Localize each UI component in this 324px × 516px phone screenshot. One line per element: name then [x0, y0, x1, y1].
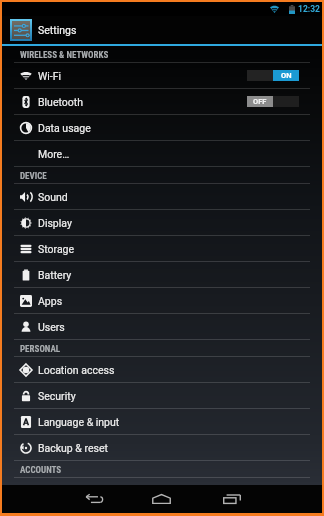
button[interactable]: More… [2, 141, 322, 166]
staticText: Security [38, 390, 76, 402]
staticText: Storage [38, 243, 75, 255]
button[interactable]: Display [2, 210, 322, 235]
button[interactable]: Settings [2, 16, 322, 44]
staticText: Apps [38, 295, 63, 307]
staticText: Data usage [38, 122, 91, 134]
button[interactable]: Location access [2, 357, 322, 382]
staticText: OFF [253, 97, 267, 106]
staticText: Battery [38, 269, 72, 281]
staticText: Sound [38, 191, 68, 203]
staticText: Settings [38, 24, 77, 36]
button[interactable]: Home [137, 485, 186, 513]
staticText: Language & input [38, 416, 120, 428]
button[interactable]: Recent apps [207, 485, 256, 513]
staticText: Backup & reset [38, 442, 108, 454]
button[interactable]: Back [69, 485, 118, 513]
button[interactable]: Storage [2, 236, 322, 261]
button[interactable]: Sound [2, 184, 322, 209]
button[interactable]: Bluetooth [2, 89, 322, 114]
staticText: DEVICE [20, 171, 47, 182]
button[interactable]: Users [2, 314, 322, 339]
button[interactable]: OFF [247, 96, 299, 107]
staticText: Bluetooth [38, 96, 83, 108]
button[interactable]: Wi-Fi [2, 63, 322, 88]
button[interactable]: Data usage [2, 115, 322, 140]
button[interactable]: Battery [2, 262, 322, 287]
staticText: Wi-Fi [38, 70, 62, 82]
staticText: WIRELESS & NETWORKS [20, 50, 109, 61]
button[interactable]: Apps [2, 288, 322, 313]
staticText: Users [38, 321, 65, 333]
staticText: Location access [38, 364, 115, 376]
button[interactable]: Backup & reset [2, 435, 322, 460]
button[interactable]: Security [2, 383, 322, 408]
staticText: Display [38, 217, 72, 229]
staticText: More… [38, 148, 70, 160]
staticText: 12:32 [298, 4, 320, 14]
button[interactable]: ON [247, 70, 299, 81]
staticText: ON [281, 71, 292, 80]
button[interactable]: Language & input [2, 409, 322, 434]
staticText: PERSONAL [20, 344, 61, 355]
staticText: ACCOUNTS [20, 465, 62, 476]
